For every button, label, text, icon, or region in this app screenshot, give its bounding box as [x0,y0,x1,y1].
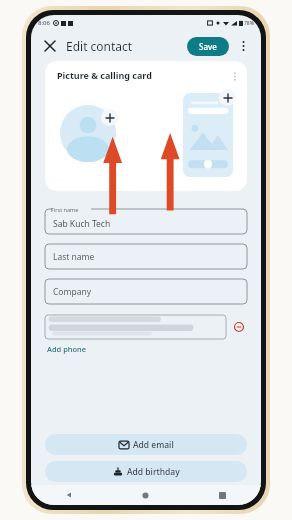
staticText: Add email [133,439,174,451]
button[interactable]: First name [45,207,247,234]
button[interactable]: Add email [45,434,247,455]
button[interactable]: Save [187,37,229,56]
staticText: Add phone [47,344,87,354]
button[interactable] [45,314,226,339]
button[interactable]: Add picture [55,100,121,166]
button[interactable]: Card options [228,69,242,83]
staticText: Picture & calling card [57,69,152,81]
staticText: First name [51,206,79,213]
button[interactable]: Close [39,35,61,57]
button[interactable]: Back [31,485,107,505]
staticText: Edit contact [66,38,133,54]
button[interactable]: Remove phone [231,319,247,335]
staticText: 8:06 [38,19,50,27]
staticText: Company [53,286,92,298]
button[interactable]: Company [45,277,247,304]
button[interactable]: Recent apps [184,485,261,505]
staticText: Last name [53,251,95,263]
button[interactable]: Add calling card [183,93,233,177]
button[interactable]: Picture & calling card [45,61,247,191]
staticText: Save [199,41,217,52]
staticText: Add birthday [127,466,180,478]
button[interactable]: Add birthday [45,461,247,482]
staticText: 78% [244,20,254,27]
button[interactable]: More options [233,36,253,56]
staticText: Sab Kuch Tech [53,218,111,230]
button[interactable]: Add phone [45,343,89,355]
button[interactable]: Last name [45,242,247,269]
button[interactable]: Home [107,485,184,505]
